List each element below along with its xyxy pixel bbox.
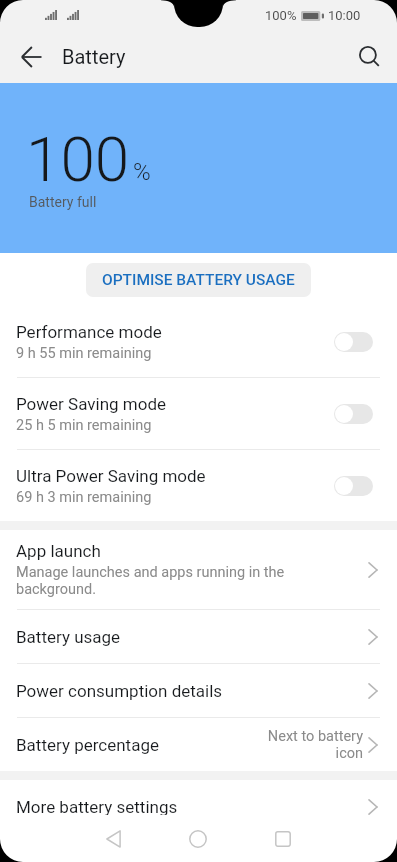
staticText: Ultra Power Saving mode (16, 466, 206, 486)
staticText: Performance mode (16, 322, 162, 342)
staticText: Battery full (29, 194, 97, 210)
staticText: Battery percentage (16, 735, 159, 755)
button[interactable]: App launch (0, 530, 397, 609)
button[interactable]: More battery settings (0, 780, 397, 833)
staticText: Next to battery icon (267, 728, 363, 762)
button[interactable]: Performance mode (0, 306, 397, 377)
staticText: 69 h 3 min remaining (16, 489, 152, 506)
button[interactable]: Toggle (334, 332, 373, 352)
staticText: % (133, 158, 151, 186)
button[interactable]: Ultra Power Saving mode (0, 450, 397, 521)
button[interactable]: Power Saving mode (0, 378, 397, 449)
button[interactable]: Toggle (334, 476, 373, 496)
staticText: Manage launches and apps running in the … (16, 564, 285, 598)
staticText: App launch (16, 541, 101, 561)
staticText: 10:00 (328, 8, 361, 23)
staticText: 100 (26, 123, 130, 196)
staticText: Battery usage (16, 627, 121, 647)
staticText: Power consumption details (16, 681, 223, 701)
button[interactable]: Search (341, 32, 397, 81)
staticText: More battery settings (16, 797, 178, 817)
button[interactable]: Battery usage (0, 610, 397, 663)
button[interactable]: Toggle (334, 404, 373, 424)
button[interactable]: OPTIMISE BATTERY USAGE (86, 263, 311, 297)
button[interactable]: Back (71, 815, 155, 862)
staticText: Battery (62, 45, 126, 68)
button[interactable]: Home (156, 815, 240, 862)
button[interactable]: Back (0, 32, 62, 81)
staticText: 9 h 55 min remaining (16, 345, 152, 362)
button[interactable]: Power consumption details (0, 664, 397, 717)
staticText: Power Saving mode (16, 394, 167, 414)
staticText: 25 h 5 min remaining (16, 417, 152, 434)
button[interactable]: Recents (240, 815, 325, 862)
button[interactable]: Battery percentage (0, 718, 397, 771)
staticText: OPTIMISE BATTERY USAGE (102, 271, 295, 289)
staticText: 100% (265, 8, 297, 23)
